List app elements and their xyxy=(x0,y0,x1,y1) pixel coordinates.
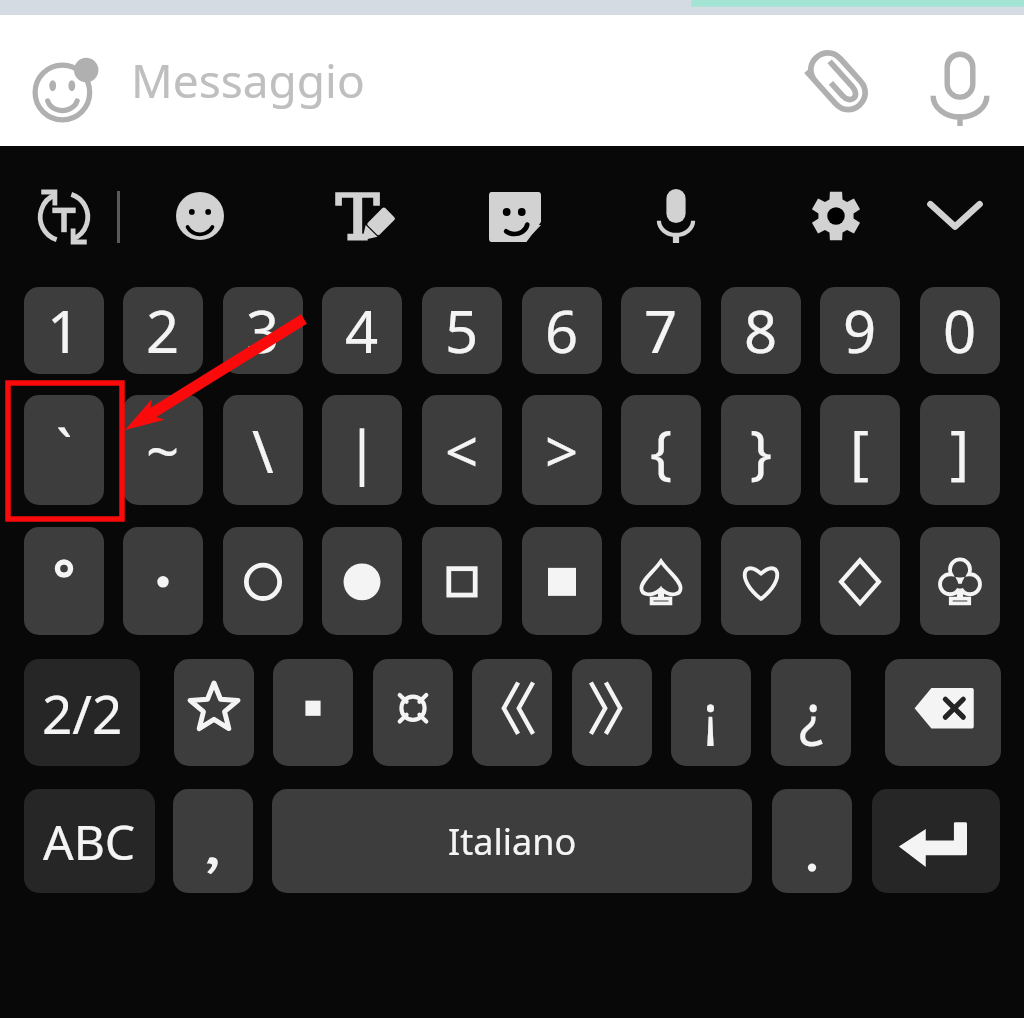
staticText: 8 xyxy=(744,291,778,370)
button[interactable]: Period xyxy=(772,789,852,893)
button[interactable]: \ xyxy=(223,395,303,505)
staticText: 6 xyxy=(545,291,579,370)
staticText: ¡ xyxy=(703,675,719,751)
button[interactable] xyxy=(422,527,502,635)
staticText: | xyxy=(346,411,378,490)
button[interactable]: 5 xyxy=(422,287,502,374)
staticText: 2/2 xyxy=(42,677,123,749)
button[interactable]: 1 xyxy=(24,287,104,374)
staticText: ~ xyxy=(146,411,180,490)
button[interactable]: Stickers xyxy=(489,192,541,242)
button[interactable]: 0 xyxy=(920,287,1000,374)
button[interactable]: Currency sign xyxy=(373,659,453,766)
button[interactable]: ~ xyxy=(123,395,203,505)
button[interactable]: | xyxy=(322,395,402,505)
button[interactable]: Left guillemet xyxy=(472,659,552,766)
button[interactable]: Emoji xyxy=(176,192,224,240)
button[interactable]: > xyxy=(522,395,602,505)
button[interactable]: [ xyxy=(820,395,900,505)
staticText: 9 xyxy=(843,291,877,370)
staticText: 5 xyxy=(445,291,479,370)
button[interactable] xyxy=(522,527,602,635)
staticText: ABC xyxy=(43,809,136,874)
button[interactable] xyxy=(820,527,900,635)
button[interactable]: 6 xyxy=(522,287,602,374)
button[interactable]: ¿ xyxy=(771,659,851,766)
staticText: ` xyxy=(56,411,73,490)
button[interactable]: Italiano xyxy=(272,789,752,893)
button[interactable]: Hide keyboard xyxy=(927,198,983,232)
button[interactable]: Comma xyxy=(173,789,253,893)
button[interactable]: 3 xyxy=(223,287,303,374)
button[interactable]: Voice input xyxy=(656,189,696,243)
button[interactable] xyxy=(123,527,203,635)
button[interactable]: ¡ xyxy=(671,659,751,766)
button[interactable]: Settings xyxy=(811,191,861,241)
button[interactable] xyxy=(322,527,402,635)
button[interactable]: 2/2 xyxy=(24,659,140,766)
staticText: > xyxy=(545,411,579,490)
button[interactable]: { xyxy=(621,395,701,505)
staticText: ] xyxy=(950,411,970,490)
button[interactable]: Emoji xyxy=(33,54,103,124)
staticText: 4 xyxy=(345,291,379,370)
staticText: Messaggio xyxy=(131,49,365,112)
staticText: 2 xyxy=(146,291,180,370)
button[interactable]: Record voice message xyxy=(928,52,992,126)
button[interactable]: Messaggio xyxy=(131,15,781,146)
button[interactable] xyxy=(223,527,303,635)
button[interactable]: } xyxy=(721,395,801,505)
button[interactable]: Small square xyxy=(273,659,353,766)
button[interactable]: Translate xyxy=(25,178,103,256)
button[interactable]: Enter xyxy=(872,789,1000,893)
staticText: \ xyxy=(252,411,274,490)
button[interactable]: ` xyxy=(24,395,104,505)
button[interactable]: 7 xyxy=(621,287,701,374)
button[interactable]: Text edit xyxy=(330,189,388,245)
staticText: { xyxy=(650,411,673,490)
staticText: 3 xyxy=(246,291,280,370)
button[interactable]: Right guillemet xyxy=(572,659,652,766)
button[interactable]: 4 xyxy=(322,287,402,374)
button[interactable]: ] xyxy=(920,395,1000,505)
button[interactable]: 9 xyxy=(820,287,900,374)
button[interactable]: < xyxy=(422,395,502,505)
button[interactable] xyxy=(920,527,1000,635)
button[interactable]: 8 xyxy=(721,287,801,374)
button[interactable] xyxy=(621,527,701,635)
staticText: < xyxy=(445,411,479,490)
button[interactable]: 2 xyxy=(123,287,203,374)
staticText: Italiano xyxy=(448,817,577,866)
staticText: 0 xyxy=(943,291,977,370)
button[interactable]: Attach file xyxy=(810,54,880,124)
staticText: } xyxy=(750,411,773,490)
staticText: [ xyxy=(850,411,870,490)
staticText: ¿ xyxy=(799,675,824,751)
button[interactable]: Backspace xyxy=(885,659,1001,766)
button[interactable] xyxy=(721,527,801,635)
button[interactable]: ABC xyxy=(24,789,155,893)
button[interactable] xyxy=(24,527,104,635)
staticText: 1 xyxy=(47,291,81,370)
button[interactable]: Star xyxy=(174,659,254,766)
staticText: 7 xyxy=(644,291,678,370)
